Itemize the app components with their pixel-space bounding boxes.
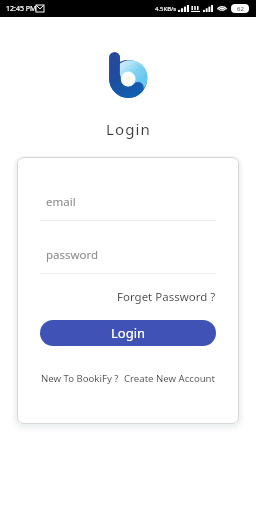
other: Unread mail xyxy=(36,5,44,12)
staticText: Create New Account xyxy=(124,372,216,385)
button[interactable]: Forget Password ? xyxy=(117,289,216,305)
staticText: 4.5KB/s xyxy=(155,5,177,13)
staticText: Login xyxy=(111,324,146,342)
button[interactable]: email xyxy=(40,194,216,221)
button[interactable]: password xyxy=(40,247,216,274)
staticText: password xyxy=(46,247,99,263)
staticText: Login xyxy=(106,119,151,139)
staticText: Forget Password ? xyxy=(117,289,216,305)
staticText: 12:45 PM xyxy=(6,4,37,14)
button[interactable]: Login xyxy=(40,320,216,346)
staticText: email xyxy=(46,194,76,210)
staticText: 62 xyxy=(237,5,244,13)
button[interactable]: Create New Account xyxy=(124,372,216,385)
other: BookiFy logo xyxy=(104,46,154,96)
staticText: New To BookiFy ? xyxy=(41,372,119,385)
